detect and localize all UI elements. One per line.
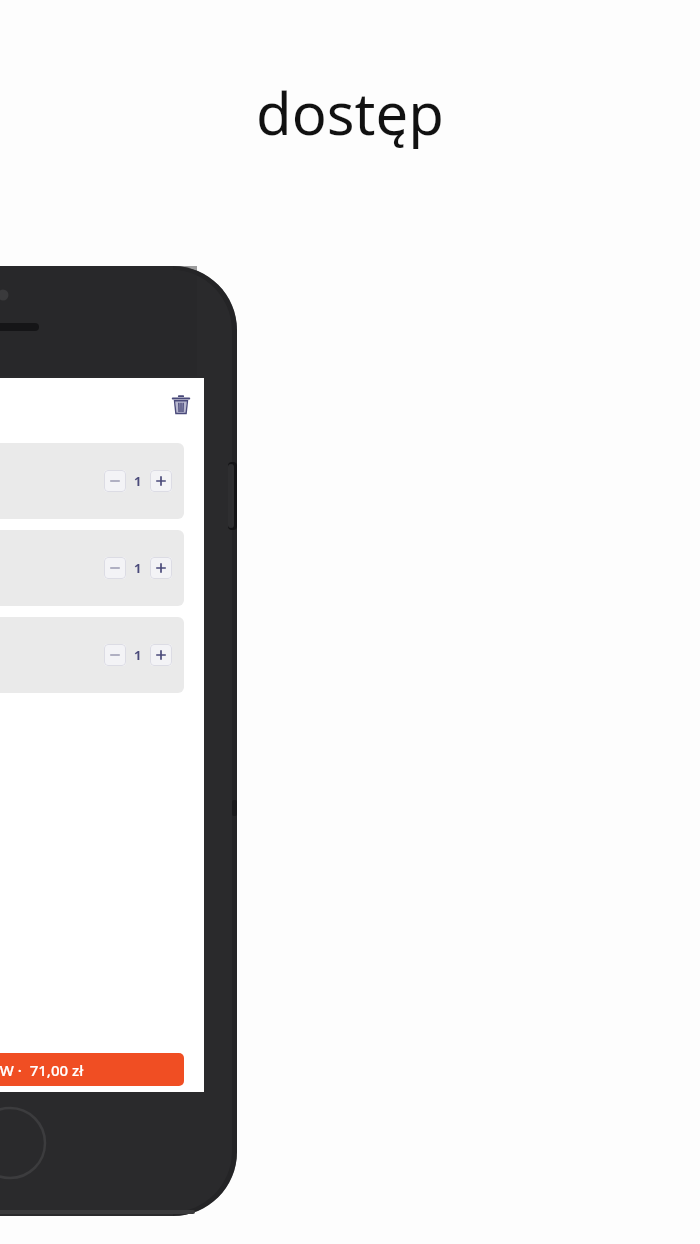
button[interactable]: Zwiększ [150,644,172,666]
button[interactable]: Zmniejsz [104,557,126,579]
button[interactable]: Zmniejsz [0,443,184,519]
staticText: ZAMÓW · 71,00 zł [0,1060,84,1080]
button[interactable]: Zwiększ [150,557,172,579]
staticText: dostęp [256,73,444,152]
button[interactable]: Zmniejsz [104,470,126,492]
button[interactable]: Zmniejsz [104,644,126,666]
staticText: 1 [134,646,142,664]
staticText: 1 [134,472,142,490]
button[interactable]: ZAMÓW · 71,00 zł [0,1053,184,1086]
button[interactable]: Usuń wszystko [166,390,196,420]
button[interactable]: Zmniejsz [0,617,184,693]
staticText: 1 [134,559,142,577]
button[interactable]: Zwiększ [150,470,172,492]
button[interactable]: Zmniejsz [0,530,184,606]
